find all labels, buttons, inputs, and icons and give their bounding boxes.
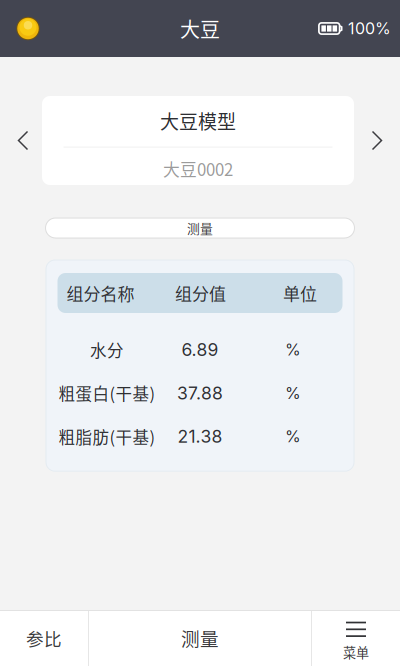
staticText: 21.38: [177, 426, 222, 447]
staticText: 粗蛋白(干基): [58, 381, 155, 405]
staticText: 测量: [187, 219, 213, 237]
staticText: 测量: [181, 624, 219, 651]
staticText: 水分: [90, 338, 124, 362]
staticText: 组分名称: [66, 281, 134, 305]
staticText: 大豆0002: [163, 157, 233, 181]
button[interactable]: Product: [0, 0, 56, 57]
staticText: %: [285, 383, 301, 403]
staticText: 参比: [26, 625, 62, 651]
button[interactable]: 菜单: [312, 610, 400, 666]
staticText: 37.88: [177, 382, 223, 404]
staticText: 单位: [283, 281, 317, 305]
button[interactable]: 测量: [89, 610, 311, 666]
staticText: 大豆: [180, 14, 220, 43]
staticText: %: [285, 340, 301, 359]
staticText: 菜单: [343, 642, 369, 661]
staticText: %: [285, 427, 301, 446]
button[interactable]: 参比: [0, 610, 88, 666]
staticText: 组分值: [175, 281, 226, 305]
staticText: 粗脂肪(干基): [58, 425, 155, 448]
button[interactable]: Previous model: [0, 96, 42, 185]
staticText: 6.89: [181, 339, 218, 360]
button[interactable]: 测量: [45, 218, 354, 238]
staticText: 大豆模型: [160, 107, 236, 135]
button[interactable]: Next model: [354, 96, 400, 185]
staticText: 100%: [348, 19, 391, 38]
